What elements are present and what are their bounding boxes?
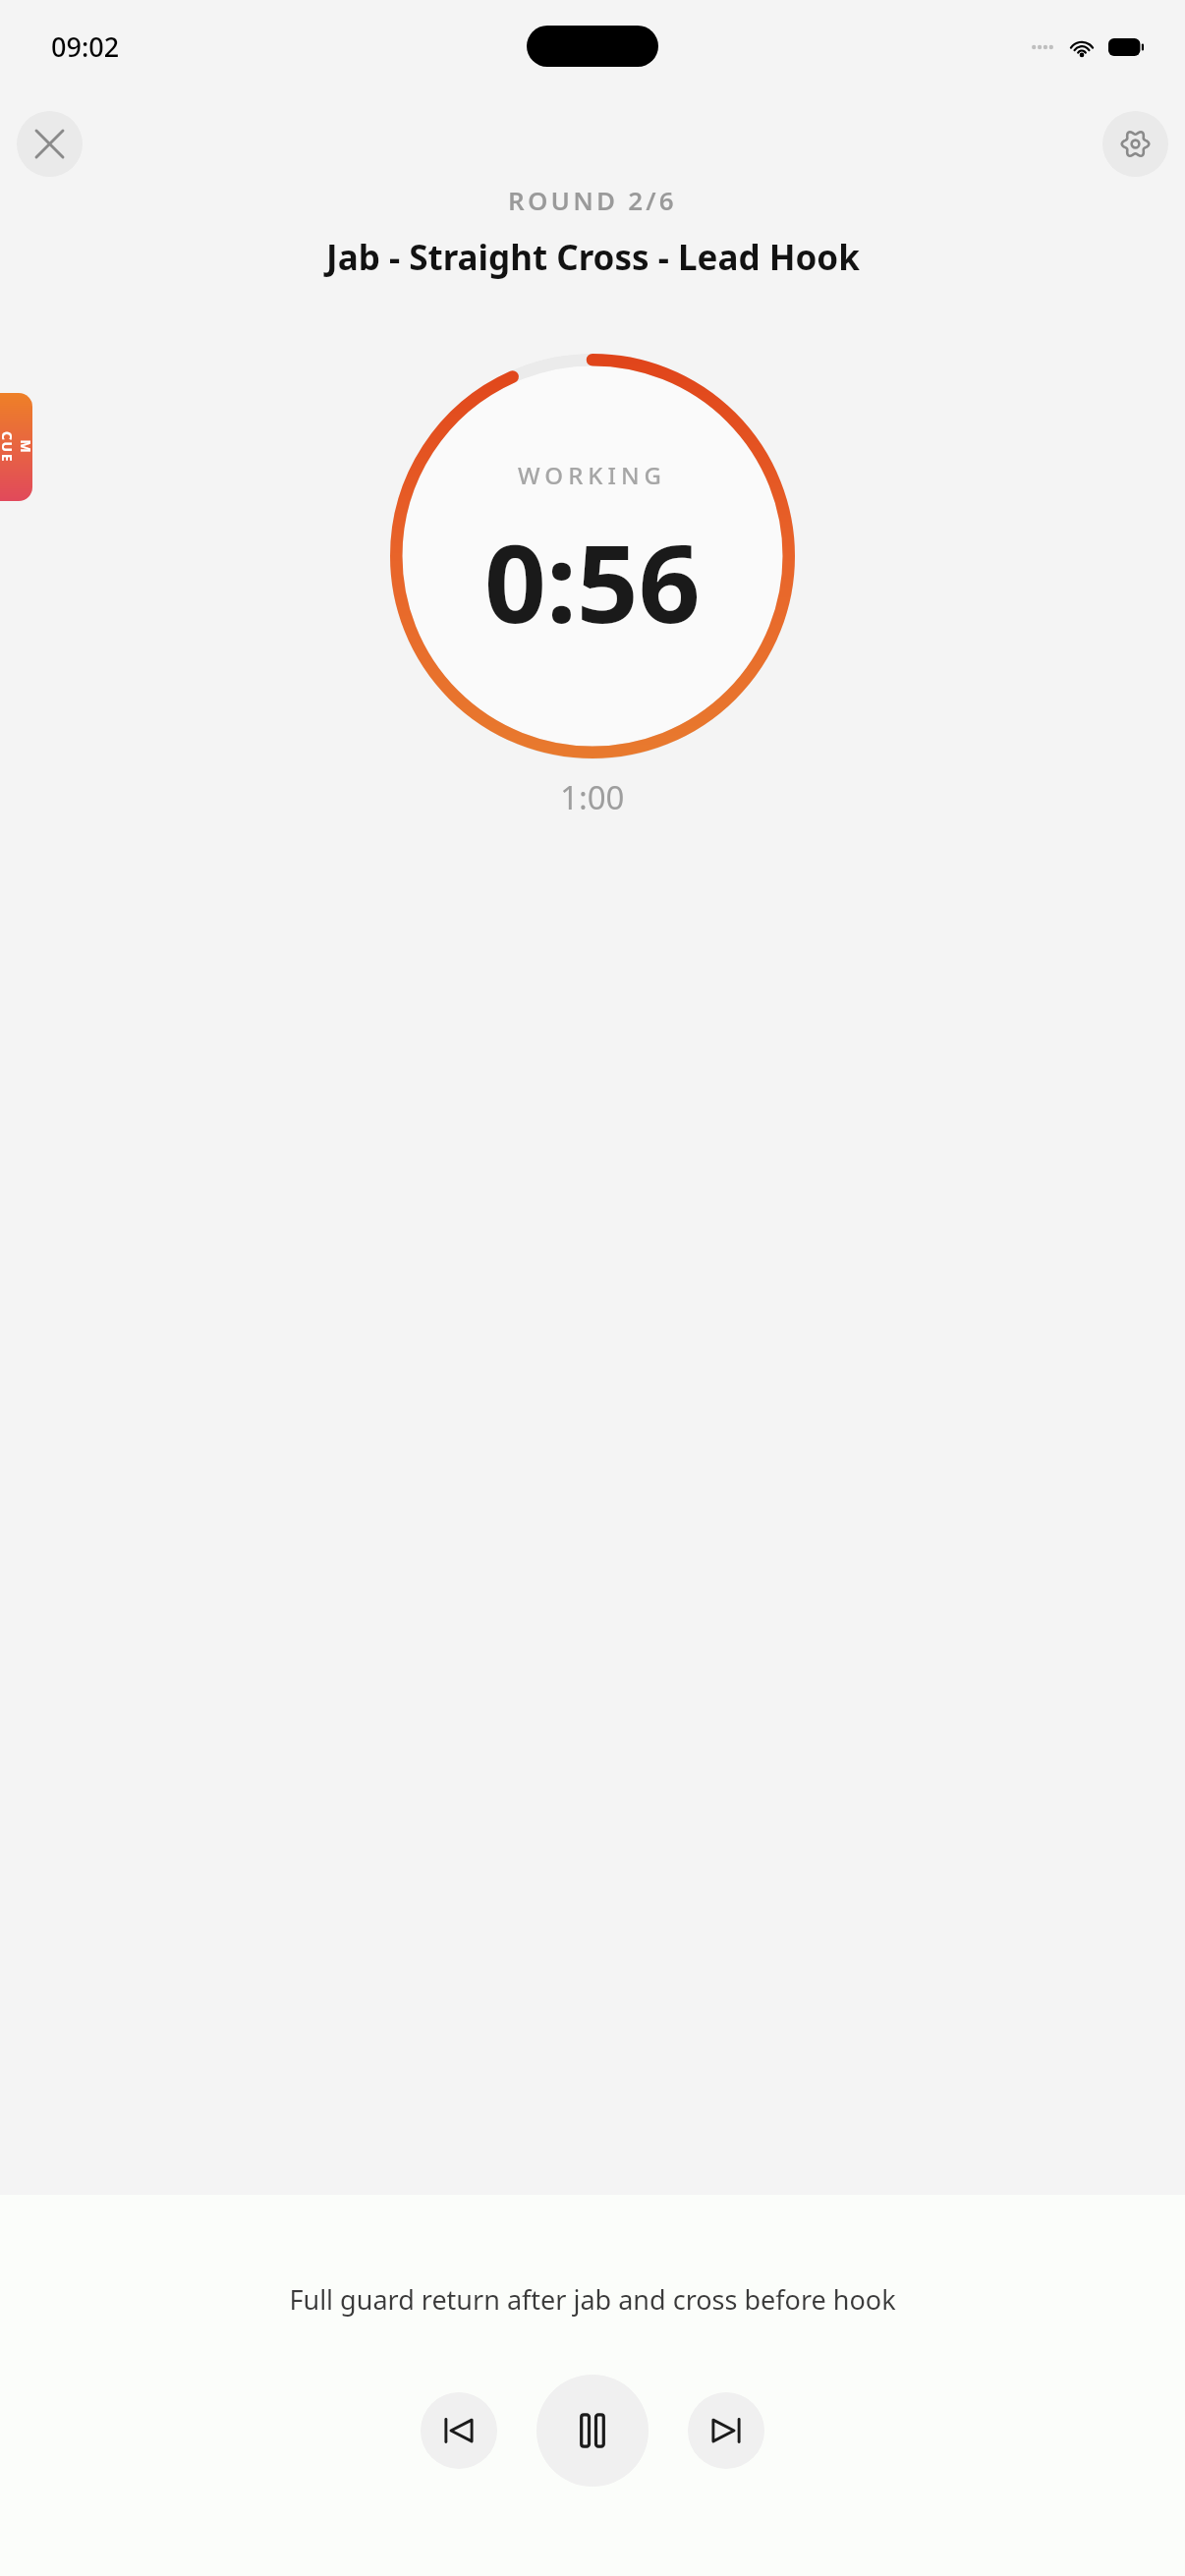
staticText: 0:56 xyxy=(484,507,701,654)
button[interactable]: Settings xyxy=(1102,111,1168,177)
staticText: 09:02 xyxy=(51,28,120,65)
staticText: Full guard return after jab and cross be… xyxy=(289,2281,896,2318)
staticText: Jab - Straight Cross - Lead Hook xyxy=(326,234,860,281)
button[interactable]: Pause xyxy=(536,2375,649,2487)
staticText: ROUND 2/6 xyxy=(508,183,677,217)
staticText: WORKING xyxy=(518,459,667,491)
button[interactable]: Close xyxy=(17,111,83,177)
button[interactable]: Previous xyxy=(421,2392,497,2469)
staticText: FORM CUES xyxy=(0,431,32,463)
button[interactable]: FORM CUES xyxy=(0,393,32,501)
staticText: 1:00 xyxy=(560,775,625,819)
button[interactable]: Next xyxy=(688,2392,764,2469)
